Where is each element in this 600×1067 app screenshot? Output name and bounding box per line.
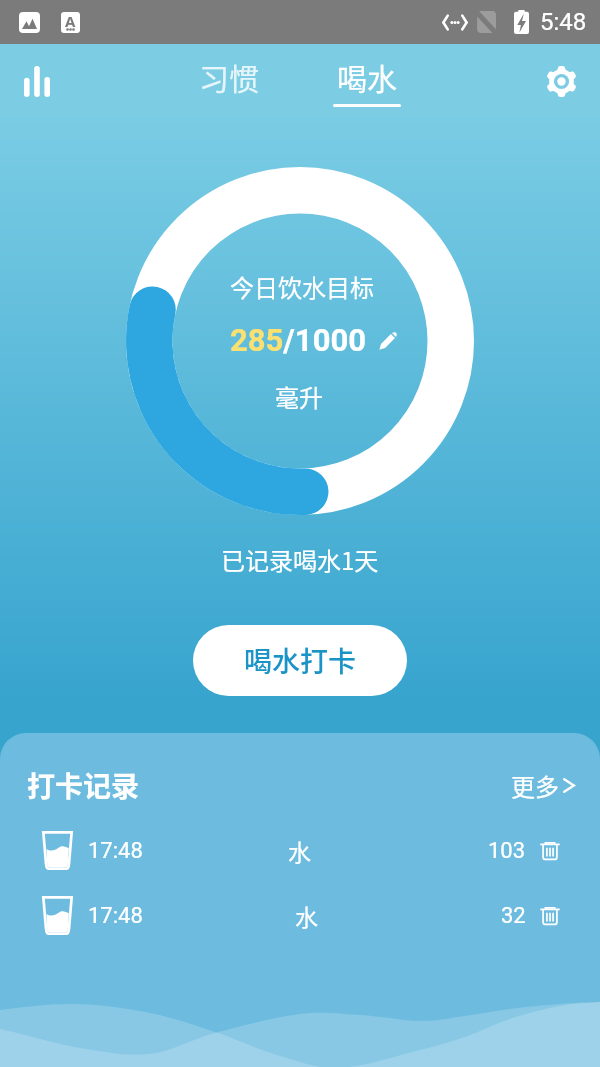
staticText: 已记录喝水1天 [221, 542, 379, 577]
staticText: 打卡记录 [27, 765, 140, 806]
staticText: 32 [501, 903, 526, 929]
staticText: 285/1000 [230, 322, 367, 358]
button[interactable]: 喝水 [319, 47, 415, 115]
button[interactable]: Edit goal [372, 325, 404, 357]
staticText: 毫升 [275, 379, 323, 414]
staticText: 喝水 [337, 55, 397, 98]
button[interactable]: Statistics [0, 45, 72, 117]
staticText: 17:48 [88, 838, 143, 864]
button[interactable]: 习惯 [185, 47, 273, 106]
staticText: 喝水打卡 [244, 640, 357, 681]
staticText: 17:48 [88, 903, 143, 929]
staticText: 更多 [511, 768, 559, 803]
button[interactable]: Delete record [538, 903, 564, 929]
staticText: 水 [288, 834, 311, 867]
staticText: 水 [295, 899, 318, 932]
button[interactable]: 喝水打卡 [193, 625, 407, 696]
staticText: A [65, 12, 76, 31]
staticText: 5:48 [540, 8, 587, 36]
button[interactable]: Delete record [538, 838, 564, 864]
button[interactable]: 更多 [507, 762, 579, 809]
staticText: 103 [488, 838, 526, 864]
staticText: 今日饮水目标 [230, 269, 374, 304]
button[interactable]: 17:48 [0, 818, 600, 883]
button[interactable]: 17:48 [0, 883, 600, 948]
button[interactable]: Settings [528, 45, 600, 117]
staticText: 习惯 [199, 55, 259, 98]
